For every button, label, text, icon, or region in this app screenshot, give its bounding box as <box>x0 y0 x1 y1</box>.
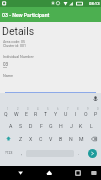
staticText: 2 <box>17 108 19 111</box>
staticText: 08:13 <box>89 1 100 6</box>
button[interactable]: S <box>16 119 26 132</box>
staticText: Individual Number <box>3 54 34 58</box>
staticText: B <box>59 136 63 142</box>
staticText: 9 <box>87 108 89 111</box>
staticText: K <box>79 123 83 129</box>
button[interactable]: X <box>26 132 36 145</box>
button[interactable]: Back <box>13 166 28 180</box>
staticText: A <box>9 123 13 129</box>
button[interactable]: Z <box>16 132 26 145</box>
staticText: 6 <box>57 108 59 111</box>
staticText: 0 <box>97 108 99 111</box>
staticText: E <box>25 111 28 117</box>
staticText: M <box>79 136 84 142</box>
staticText: W <box>14 111 19 117</box>
staticText: X <box>29 136 33 142</box>
staticText: 4 <box>37 108 39 111</box>
staticText: ?123 <box>5 151 13 155</box>
button[interactable]: N <box>66 132 76 145</box>
button[interactable]: Backspace <box>86 132 101 145</box>
button[interactable]: , <box>17 145 26 161</box>
button[interactable]: ?123 <box>0 145 17 161</box>
staticText: 5 <box>47 108 49 111</box>
button[interactable]: J <box>66 119 76 132</box>
staticText: C <box>39 136 43 142</box>
button[interactable]: 5 <box>41 106 51 119</box>
button[interactable]: K <box>76 119 86 132</box>
button[interactable]: 9 <box>81 106 91 119</box>
staticText: Cluster id: 001 <box>3 44 26 48</box>
button[interactable]: Switch keyboard <box>87 166 101 180</box>
button[interactable]: Recent apps <box>70 166 85 180</box>
staticText: 1 <box>7 108 9 111</box>
staticText: P <box>94 111 98 117</box>
staticText: 03 <box>3 62 9 67</box>
button[interactable]: F <box>36 119 46 132</box>
button[interactable]: Home <box>42 166 57 180</box>
staticText: 7 <box>67 108 69 111</box>
button[interactable]: 7 <box>61 106 71 119</box>
staticText: . <box>78 151 80 156</box>
button[interactable]: Shift <box>0 132 16 145</box>
button[interactable]: 2 <box>11 106 21 119</box>
staticText: Q <box>4 111 8 117</box>
staticText: , <box>21 151 22 156</box>
staticText: Name <box>3 73 14 77</box>
staticText: 8 <box>77 108 79 111</box>
button[interactable]: G <box>46 119 56 132</box>
button[interactable]: D <box>26 119 36 132</box>
button[interactable]: 6 <box>51 106 61 119</box>
staticText: H <box>59 123 63 129</box>
staticText: Details <box>2 25 35 37</box>
button[interactable]: 1 <box>0 106 11 119</box>
button[interactable]: M <box>76 132 86 145</box>
staticText: J <box>70 123 73 129</box>
staticText: F <box>40 123 43 129</box>
staticText: O <box>84 111 88 117</box>
button[interactable]: 0 <box>91 106 101 119</box>
button[interactable]: 4 <box>31 106 41 119</box>
button[interactable]: C <box>36 132 46 145</box>
staticText: L <box>90 123 93 129</box>
button[interactable]: 8 <box>71 106 81 119</box>
staticText: R <box>34 111 38 117</box>
staticText: Y <box>54 111 58 117</box>
staticText: 03 - New Participant <box>2 12 50 18</box>
staticText: G <box>49 123 53 129</box>
button[interactable]: H <box>56 119 66 132</box>
button[interactable]: Next <box>83 145 101 161</box>
staticText: Area code: 05 <box>3 40 25 44</box>
staticText: N <box>69 136 73 142</box>
button[interactable]: B <box>56 132 66 145</box>
staticText: 3 <box>27 108 29 111</box>
staticText: D <box>29 123 33 129</box>
staticText: U <box>64 111 68 117</box>
button[interactable]: V <box>46 132 56 145</box>
staticText: T <box>44 111 48 117</box>
staticText: V <box>49 136 53 142</box>
staticText: I <box>75 111 77 117</box>
staticText: Z <box>19 136 23 142</box>
staticText: S <box>19 123 23 129</box>
button[interactable]: A <box>5 119 16 132</box>
button[interactable]: L <box>86 119 96 132</box>
button[interactable]: 3 <box>21 106 31 119</box>
